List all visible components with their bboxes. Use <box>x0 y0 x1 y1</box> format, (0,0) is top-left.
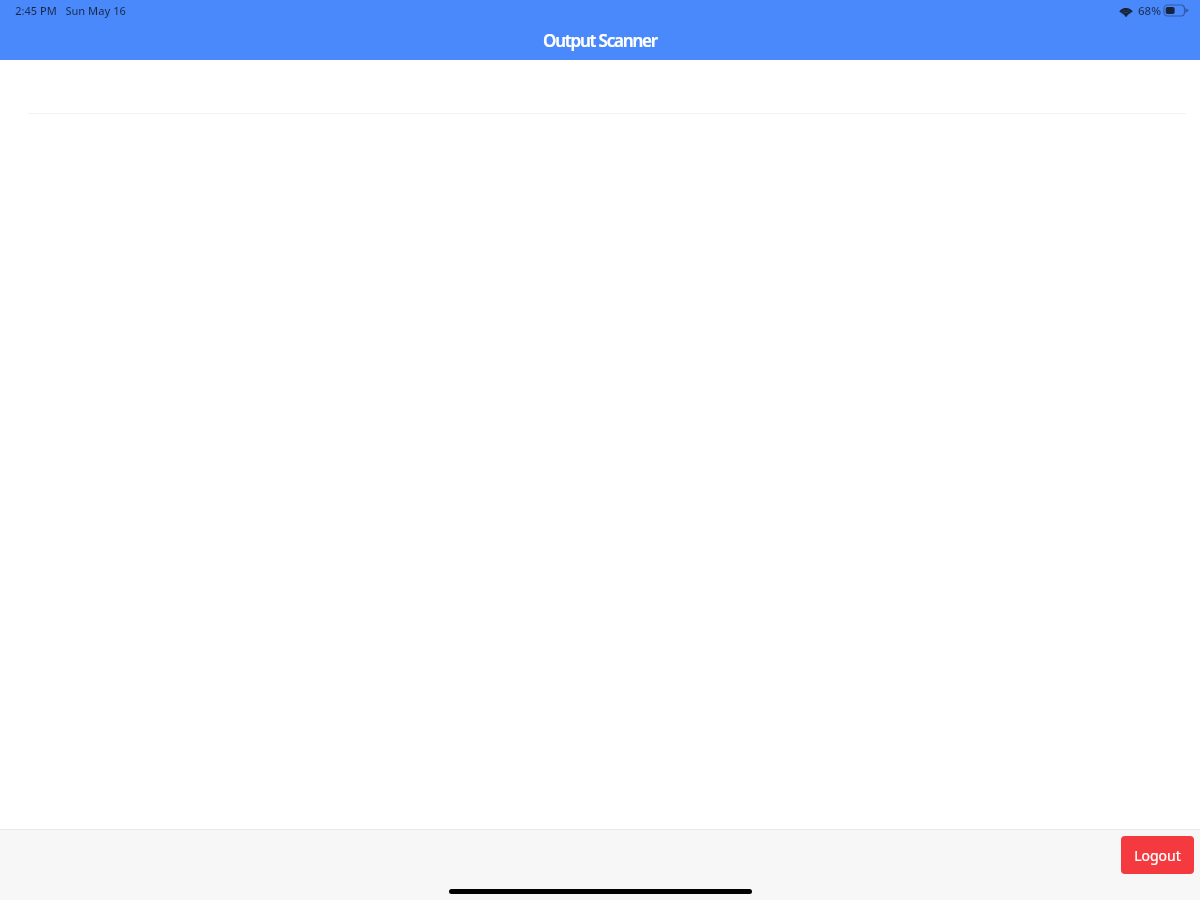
staticText: 68% <box>1138 3 1161 19</box>
other: Battery 68 percent <box>1164 5 1189 16</box>
staticText: Logout <box>1134 846 1181 865</box>
other: Wi-Fi <box>1119 6 1133 16</box>
staticText: 2:45 PM Sun May 16 <box>15 3 126 18</box>
staticText: Output Scanner <box>543 29 657 52</box>
button[interactable]: Logout <box>1121 836 1194 874</box>
